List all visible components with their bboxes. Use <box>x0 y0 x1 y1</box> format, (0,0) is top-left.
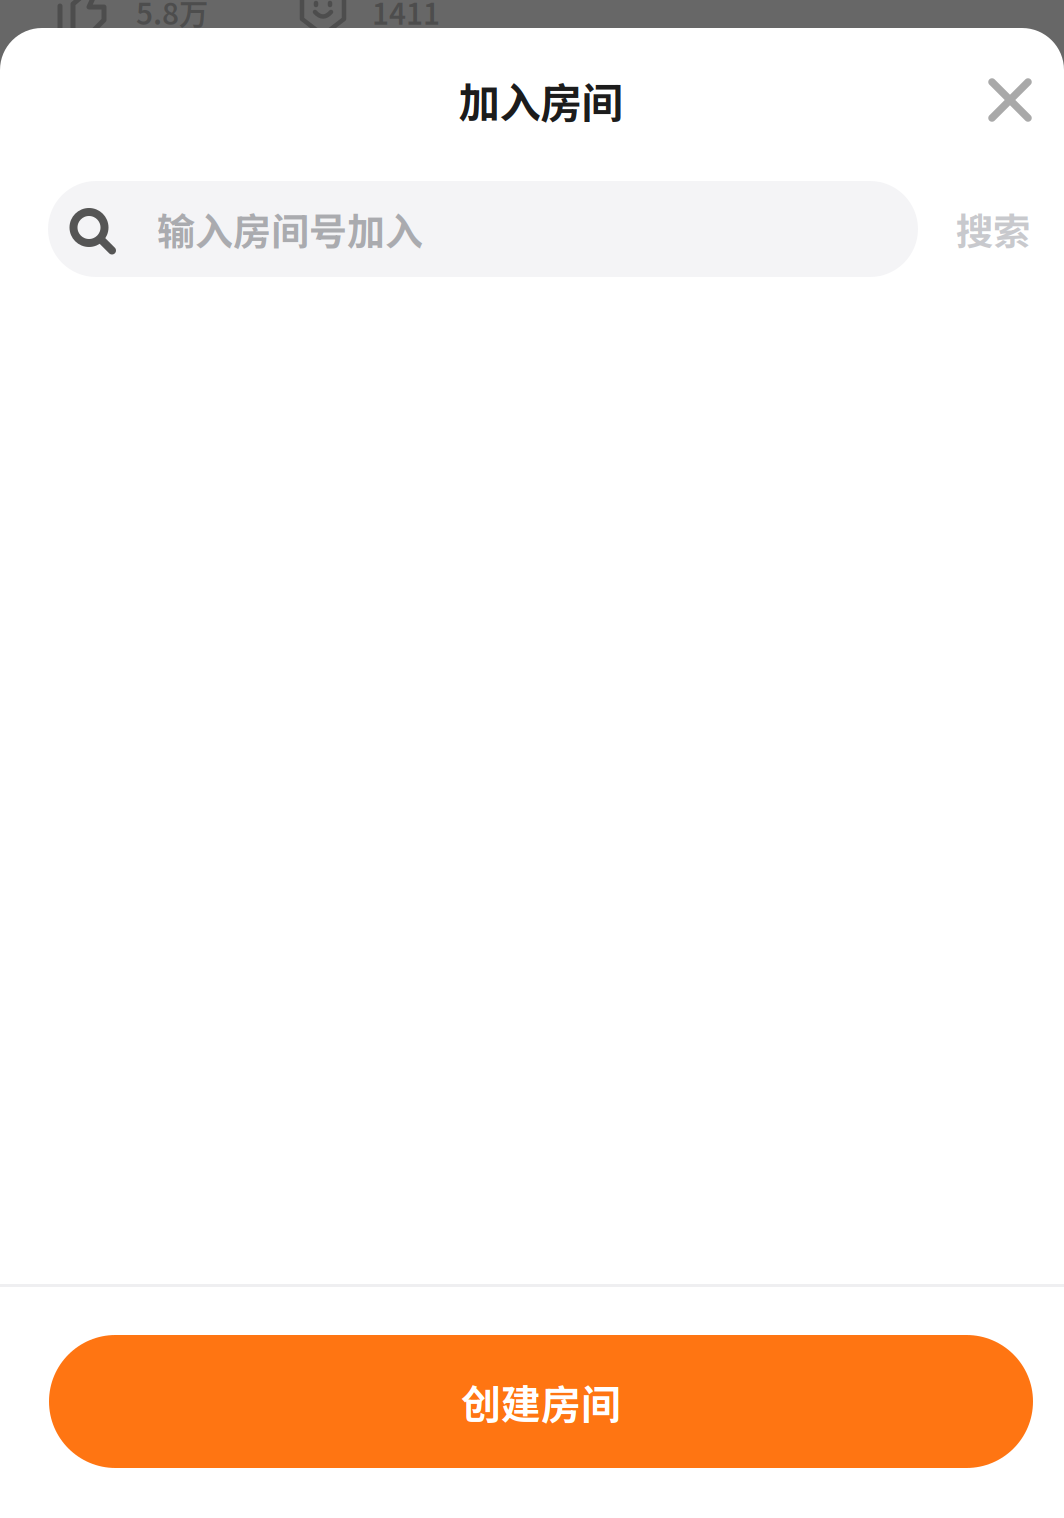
staticText: 搜索 <box>956 202 1030 256</box>
button[interactable]: 创建房间 <box>49 1335 1033 1468</box>
staticText: 加入房间 <box>458 70 622 130</box>
staticText: 5.8万 <box>136 0 208 33</box>
button[interactable]: 搜索 <box>920 181 1032 277</box>
button[interactable]: 输入房间号加入 <box>48 181 918 277</box>
button[interactable]: 关闭 <box>988 78 1032 122</box>
staticText: 输入房间号加入 <box>157 201 423 256</box>
staticText: 创建房间 <box>461 1372 621 1430</box>
staticText: 1411 <box>372 0 440 33</box>
